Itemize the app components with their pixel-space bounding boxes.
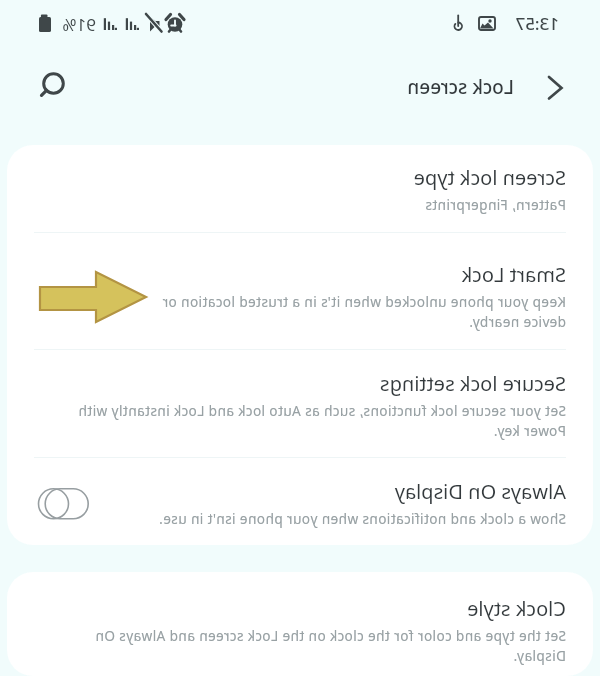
staticText: Set your secure lock functions, such as … [34,401,566,440]
staticText: Always On Display [107,478,566,505]
staticText: Show a clock and notifications when your… [107,509,566,528]
button[interactable]: Screen lock type [7,145,593,232]
staticText: Smart Lock [34,261,566,288]
staticText: Set the type and color for the clock on … [34,626,566,665]
button[interactable]: Always On Display [7,458,593,545]
button[interactable]: Always On Display toggle [38,488,89,520]
button[interactable]: Search [28,63,74,109]
staticText: Pattern, Fingerprints [34,195,566,214]
staticText: Screen lock type [34,164,566,191]
button[interactable]: Smart Lock [7,233,593,349]
button[interactable]: Secure lock settings [7,350,593,457]
staticText: Keep your phone unlocked when it's in a … [34,292,566,331]
staticText: Clock style [34,595,566,622]
button[interactable]: Clock style [7,572,593,676]
staticText: 13:57 [515,12,559,35]
button[interactable]: Back [526,66,572,112]
staticText: Secure lock settings [34,370,566,397]
staticText: 91% [62,13,96,36]
staticText: Lock screen [407,74,514,100]
